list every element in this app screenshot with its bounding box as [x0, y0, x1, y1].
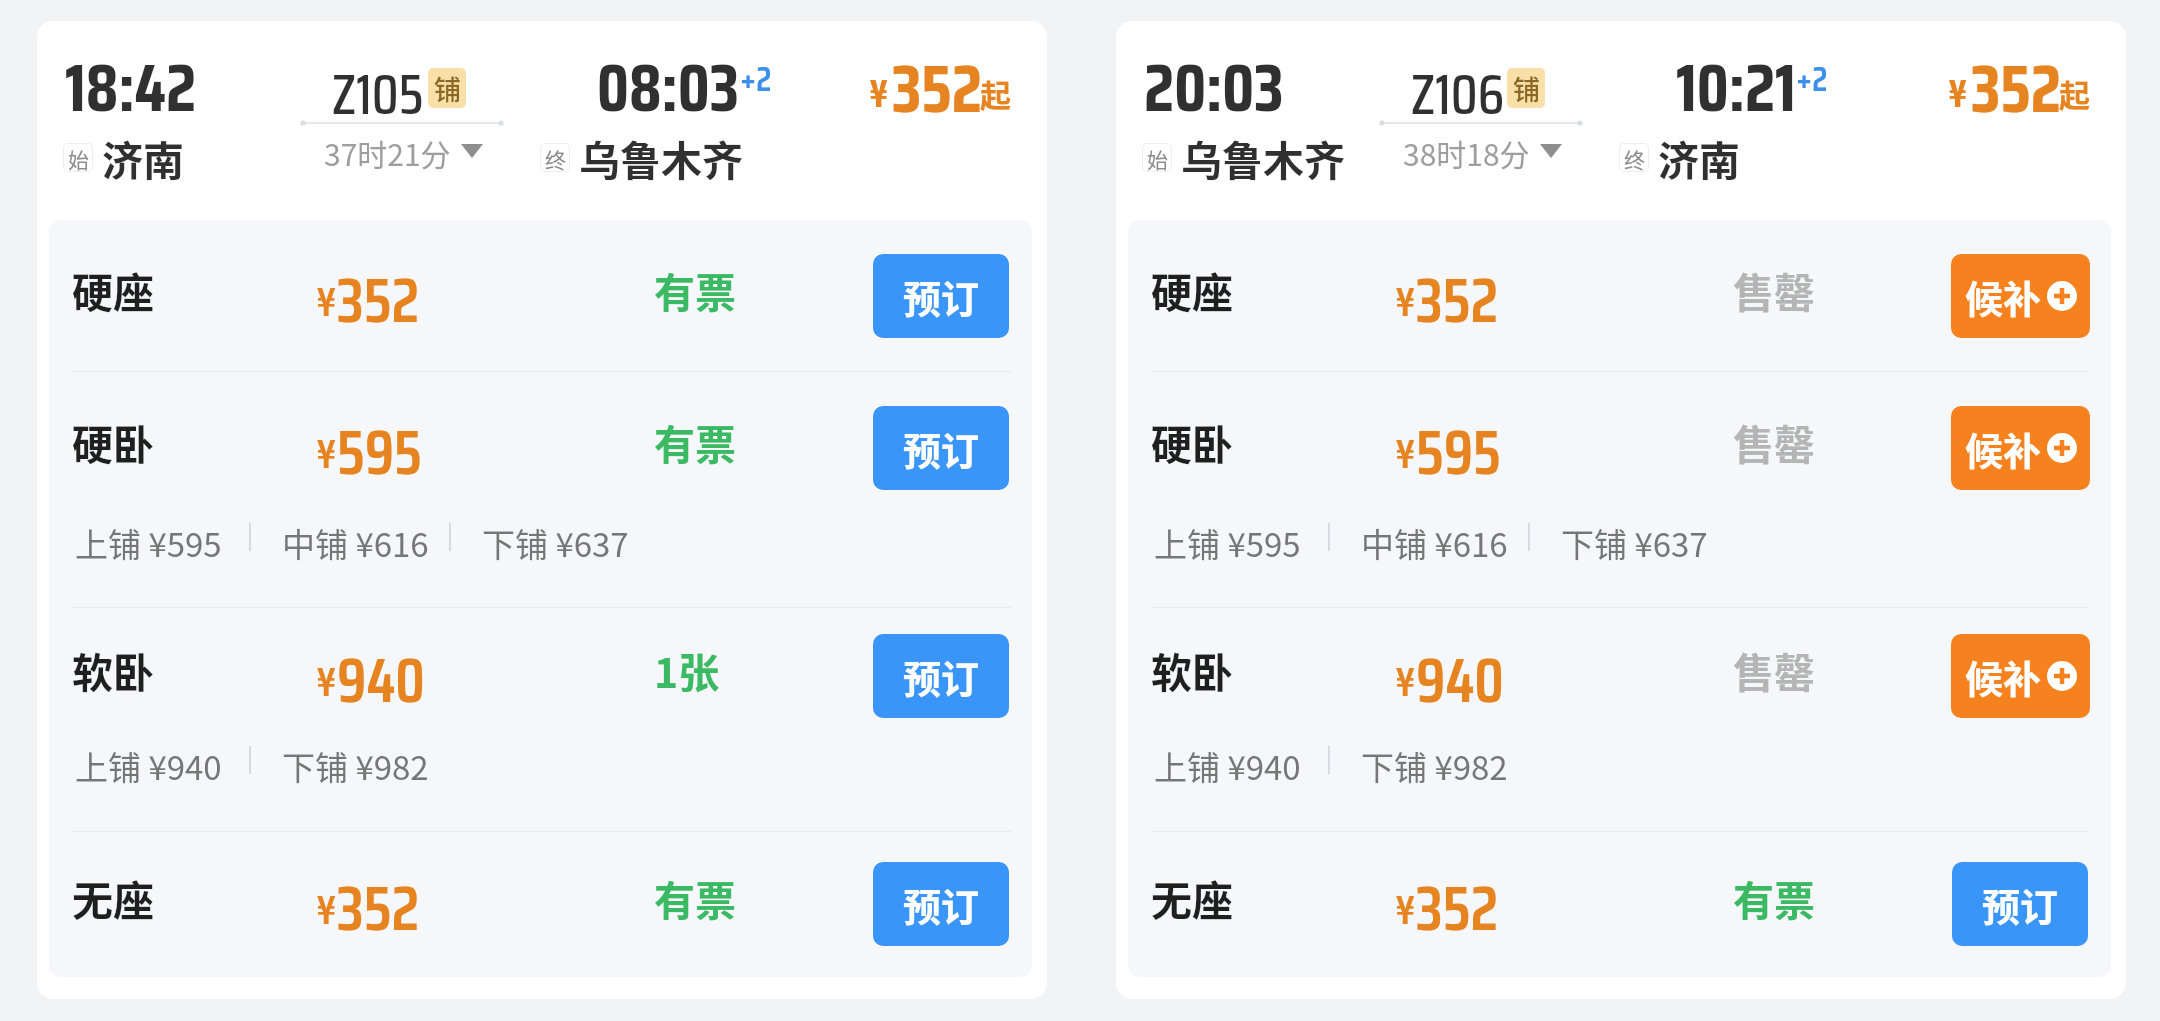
staticText: 352: [1416, 860, 1499, 958]
staticText: 售罄: [1733, 640, 1815, 699]
button[interactable]: 候补: [1951, 406, 2090, 490]
staticText: 预订: [903, 649, 980, 704]
staticText: 铺: [1513, 69, 1540, 108]
staticText: 终: [1624, 144, 1645, 171]
button[interactable]: 中铺 ¥616: [1361, 519, 1508, 567]
staticText: 预订: [903, 877, 980, 932]
staticText: 下铺 ¥637: [482, 519, 629, 567]
staticText: ¥: [316, 649, 337, 714]
staticText: ¥: [316, 421, 337, 486]
staticText: 乌鲁木齐: [1181, 128, 1345, 187]
staticText: 下铺 ¥982: [282, 742, 429, 790]
button[interactable]: 候补: [1951, 634, 2090, 718]
staticText: 352: [1971, 36, 2061, 141]
button[interactable]: 上铺 ¥940: [1154, 742, 1301, 790]
staticText: 有票: [1733, 868, 1815, 927]
button[interactable]: [49, 608, 1032, 831]
other: Add to waitlist: [2047, 433, 2077, 463]
button[interactable]: 37时21分: [320, 131, 487, 171]
staticText: Z106: [1411, 50, 1505, 138]
staticText: 595: [1416, 404, 1501, 502]
staticText: 乌鲁木齐: [579, 128, 743, 187]
staticText: 352: [892, 36, 982, 141]
staticText: 中铺 ¥616: [282, 519, 429, 567]
staticText: 1张: [654, 640, 720, 699]
staticText: 37时21分: [324, 131, 451, 171]
button[interactable]: 候补: [1951, 254, 2090, 338]
button[interactable]: [1128, 220, 2111, 371]
staticText: ¥: [1395, 877, 1416, 942]
staticText: 硬座: [1151, 260, 1233, 319]
staticText: 下铺 ¥637: [1561, 519, 1708, 567]
button[interactable]: 预订: [1952, 862, 2088, 946]
staticText: 起: [980, 71, 1011, 116]
other: Add to waitlist: [2047, 661, 2077, 691]
staticText: 10:21: [1676, 35, 1796, 140]
staticText: +2: [740, 52, 772, 106]
staticText: 终: [545, 144, 566, 171]
button[interactable]: [49, 372, 1032, 607]
staticText: 售罄: [1733, 260, 1815, 319]
button[interactable]: [49, 832, 1032, 977]
button[interactable]: 预订: [873, 406, 1009, 490]
button[interactable]: 预订: [873, 254, 1009, 338]
button[interactable]: [1128, 608, 2111, 831]
button[interactable]: 上铺 ¥595: [75, 519, 222, 567]
staticText: 08:03: [597, 35, 740, 140]
staticText: ¥: [316, 269, 337, 334]
staticText: ¥: [1395, 269, 1416, 334]
staticText: 硬卧: [72, 412, 154, 471]
staticText: 352: [337, 252, 420, 350]
button[interactable]: 下铺 ¥637: [1561, 519, 1708, 567]
staticText: +2: [1796, 52, 1828, 106]
button[interactable]: [1128, 832, 2111, 977]
button[interactable]: 下铺 ¥637: [482, 519, 629, 567]
staticText: 352: [337, 860, 420, 958]
staticText: 无座: [1151, 868, 1233, 927]
staticText: 硬座: [72, 260, 154, 319]
button[interactable]: 18:42: [37, 21, 1047, 999]
staticText: ¥: [1948, 64, 1968, 124]
staticText: 上铺 ¥940: [1154, 742, 1301, 790]
button[interactable]: 下铺 ¥982: [1361, 742, 1508, 790]
staticText: 38时18分: [1403, 131, 1530, 171]
button[interactable]: 38时18分: [1399, 131, 1566, 171]
staticText: 预订: [903, 269, 980, 324]
staticText: 18:42: [65, 35, 197, 140]
staticText: 起: [2059, 71, 2090, 116]
button[interactable]: 预订: [873, 862, 1009, 946]
staticText: 无座: [72, 868, 154, 927]
staticText: 始: [1147, 144, 1168, 171]
staticText: 济南: [102, 128, 184, 187]
staticText: 有票: [654, 868, 736, 927]
button[interactable]: 中铺 ¥616: [282, 519, 429, 567]
staticText: 940: [1416, 632, 1504, 730]
button[interactable]: [49, 220, 1032, 371]
button[interactable]: 上铺 ¥940: [75, 742, 222, 790]
staticText: 预订: [1982, 877, 2059, 932]
staticText: 软卧: [72, 640, 154, 699]
staticText: Z105: [332, 50, 424, 138]
staticText: 有票: [654, 260, 736, 319]
button[interactable]: 预订: [873, 634, 1009, 718]
staticText: 上铺 ¥940: [75, 742, 222, 790]
button[interactable]: 20:03: [1116, 21, 2126, 999]
button[interactable]: 上铺 ¥595: [1154, 519, 1301, 567]
staticText: 940: [337, 632, 425, 730]
staticText: ¥: [1395, 421, 1416, 486]
staticText: 20:03: [1144, 35, 1284, 140]
staticText: 有票: [654, 412, 736, 471]
staticText: 352: [1416, 252, 1499, 350]
staticText: 候补: [1965, 269, 2042, 324]
button[interactable]: [1128, 372, 2111, 607]
staticText: 上铺 ¥595: [1154, 519, 1301, 567]
staticText: 上铺 ¥595: [75, 519, 222, 567]
staticText: 售罄: [1733, 412, 1815, 471]
button[interactable]: 下铺 ¥982: [282, 742, 429, 790]
staticText: 中铺 ¥616: [1361, 519, 1508, 567]
staticText: 候补: [1965, 649, 2042, 704]
staticText: ¥: [869, 64, 889, 124]
staticText: 候补: [1965, 421, 2042, 476]
staticText: ¥: [1395, 649, 1416, 714]
other: Add to waitlist: [2047, 281, 2077, 311]
